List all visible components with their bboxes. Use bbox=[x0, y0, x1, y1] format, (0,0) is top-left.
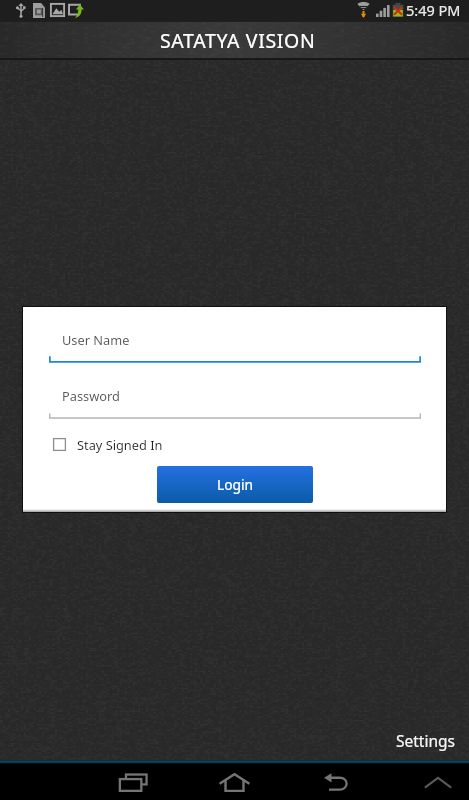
staticText: 5:49 PM bbox=[406, 0, 461, 20]
staticText: User Name bbox=[62, 331, 130, 348]
button[interactable]: Recent apps bbox=[110, 764, 156, 800]
button[interactable]: User Name bbox=[49, 327, 421, 363]
button[interactable]: Stay Signed In bbox=[49, 432, 167, 457]
staticText: Settings bbox=[396, 730, 455, 751]
button[interactable]: Password bbox=[49, 383, 421, 419]
button[interactable]: Login bbox=[157, 466, 313, 503]
staticText: SATATYA VISION bbox=[160, 27, 316, 54]
button[interactable]: Back bbox=[313, 764, 359, 800]
staticText: Password bbox=[62, 387, 120, 404]
button[interactable]: Show navigation bbox=[415, 764, 461, 800]
staticText: Stay Signed In bbox=[77, 436, 163, 453]
staticText: Login bbox=[217, 475, 254, 494]
button[interactable]: Home bbox=[211, 764, 257, 800]
button[interactable]: Settings bbox=[390, 726, 461, 755]
